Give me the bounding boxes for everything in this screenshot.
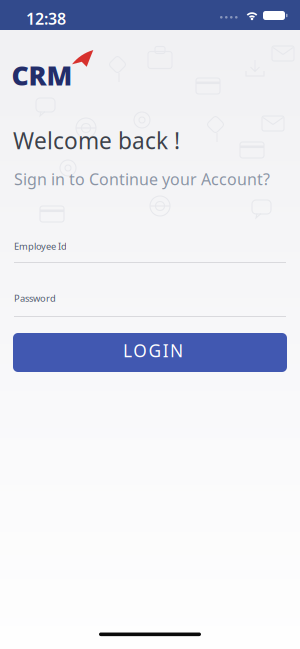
staticText: LOGIN [123, 339, 183, 362]
button[interactable]: Employee Id [14, 240, 286, 263]
staticText: Welcome back ! [13, 125, 180, 156]
staticText: 12:38 [26, 8, 66, 29]
staticText: Password [14, 292, 56, 304]
staticText: CRM [11, 57, 72, 93]
staticText: Employee Id [14, 240, 67, 252]
staticText: Sign in to Continue your Account? [14, 168, 270, 190]
button[interactable]: LOGIN [13, 333, 287, 372]
button[interactable]: Password [14, 292, 286, 317]
